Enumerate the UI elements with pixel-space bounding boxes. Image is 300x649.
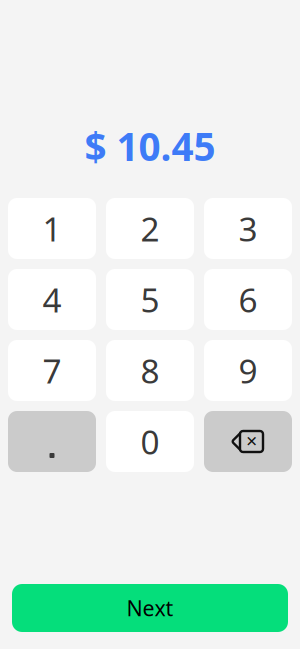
button[interactable]: Next <box>12 584 288 632</box>
button[interactable]: 3 <box>204 198 292 259</box>
staticText: Next <box>126 594 173 622</box>
staticText: 4 <box>42 277 61 322</box>
staticText: 5 <box>140 277 159 322</box>
staticText: 1 <box>42 206 61 251</box>
button[interactable]: 0 <box>106 411 194 472</box>
button[interactable]: 7 <box>8 340 96 401</box>
button[interactable]: 4 <box>8 269 96 330</box>
button[interactable]: 6 <box>204 269 292 330</box>
button[interactable]: 1 <box>8 198 96 259</box>
staticText: ✕ <box>245 433 257 450</box>
button[interactable]: 8 <box>106 340 194 401</box>
button[interactable]: 2 <box>106 198 194 259</box>
button[interactable]: Delete <box>204 411 292 472</box>
staticText: 2 <box>140 206 159 251</box>
staticText: 0 <box>140 419 159 464</box>
staticText: 3 <box>238 206 257 251</box>
staticText: $ 10.45 <box>84 120 215 172</box>
button[interactable]: Decimal point <box>8 411 96 472</box>
button[interactable]: 9 <box>204 340 292 401</box>
staticText: 7 <box>42 348 61 393</box>
staticText: 9 <box>238 348 257 393</box>
staticText: 6 <box>238 277 257 322</box>
button[interactable]: 5 <box>106 269 194 330</box>
staticText: 8 <box>140 348 159 393</box>
